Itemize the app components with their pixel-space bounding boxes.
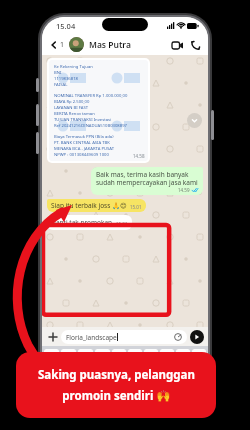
staticText: TUJUAN TRANSAKSI Investasi [54,117,112,123]
button[interactable]: Kembali [164,397,206,410]
staticText: l [191,367,193,377]
button[interactable]: Shift [44,381,65,394]
button[interactable]: p [192,349,206,362]
staticText: Baik mas, terima kasih banyak sudah memp… [96,170,198,187]
button[interactable]: r [95,349,110,362]
button[interactable]: 123 [44,397,81,410]
button[interactable]: b [135,381,149,394]
staticText: 14.59 [178,187,190,193]
staticText: NOMINAL TRANSFER Rp 1.000.000,00 [54,93,128,99]
staticText: MENARA BCA - JAKARTA PUSAT [54,146,115,152]
staticText: FAISAL [54,82,68,88]
staticText: q [49,351,54,361]
staticText: Siap itu terbaik joss 🙏😊 [51,201,127,210]
staticText: Mas Putra [89,39,131,51]
button[interactable]: Profile photo [69,37,84,52]
staticText: r [101,351,104,361]
button[interactable]: j [150,365,165,378]
staticText: f [105,367,108,377]
button[interactable]: Floria_landscape [61,330,187,344]
button[interactable]: Saking puasnya, pelanggan [16,352,216,418]
button[interactable]: e [78,349,93,362]
button[interactable]: Video call [170,38,184,52]
button[interactable]: Voice call [188,38,202,52]
staticText: Floria_landscape [66,333,117,342]
button[interactable]: Nanti tak promokan [47,215,132,230]
button[interactable]: n [151,381,165,394]
staticText: j [157,367,159,377]
staticText: 1119836818 [54,76,78,82]
staticText: LAYANAN BI FAST [54,105,89,111]
button[interactable]: f [99,365,114,378]
staticText: Nanti tak promokan [51,218,113,227]
button[interactable]: g [116,365,131,378]
button[interactable]: c [103,381,117,394]
staticText: o [181,351,186,361]
button[interactable]: u [144,349,158,362]
staticText: Ref 20241216CENADUA510B0308897 [54,123,127,129]
staticText: y [133,351,137,361]
staticText: Ke Rekening Tujuan [54,64,93,70]
staticText: PT. BANK CENTRAL ASIA TBK [54,140,110,146]
staticText: BERITA Renov taman [54,111,95,117]
button[interactable]: Spasi [83,397,162,410]
staticText: 14.58 [133,153,145,159]
staticText: i [166,351,168,361]
button[interactable]: Attach [46,330,59,343]
button[interactable]: Send [190,330,204,344]
staticText: h [138,367,143,377]
staticText: t [118,351,121,361]
staticText: Biaya Termasuk PPN (Bila ada) [54,134,114,140]
button[interactable]: Back [48,39,60,51]
button[interactable]: Siap itu terbaik joss 🙏😊 [47,199,146,212]
staticText: e [84,351,88,361]
button[interactable]: Baik mas, terima kasih banyak sudah memp… [91,167,203,195]
button[interactable]: z [70,381,85,394]
staticText: 15.04 [56,21,76,31]
staticText: 1 [60,40,65,50]
staticText: b [140,383,145,393]
staticText: u [149,351,154,361]
button[interactable]: o [176,349,190,362]
staticText: 15.01 [116,221,128,227]
button[interactable]: Scroll to bottom [187,113,202,128]
staticText: BIAYA Rp 2.500,00 [54,99,90,105]
other: Stickers [174,333,182,341]
staticText: n [156,383,161,393]
staticText: g [121,367,126,377]
button[interactable]: a [51,365,65,378]
staticText: BNI [54,70,62,76]
staticText: s [72,367,76,377]
staticText: a [56,367,60,377]
staticText: 15.01 [130,204,142,210]
button[interactable]: q [44,349,59,362]
button[interactable]: k [167,365,182,378]
staticText: NPWP : 001308449609 1000 [54,152,109,158]
staticText: promoin sendiri 🙌 [62,388,171,404]
staticText: p [197,351,202,361]
button[interactable]: v [119,381,133,394]
staticText: 123 [58,400,68,407]
staticText: Saking puasnya, pelanggan [38,367,195,383]
button[interactable]: i [160,349,174,362]
button[interactable]: y [128,349,142,362]
button[interactable]: l [184,365,199,378]
button[interactable]: d [83,365,97,378]
button[interactable]: w [61,349,76,362]
button[interactable]: t [112,349,126,362]
button[interactable]: m [167,381,181,394]
staticText: k [173,367,177,377]
button[interactable]: Ke Rekening Tujuan [47,58,150,163]
button[interactable]: h [133,365,148,378]
button[interactable]: s [67,365,81,378]
staticText: d [88,367,93,377]
button[interactable]: x [87,381,101,394]
